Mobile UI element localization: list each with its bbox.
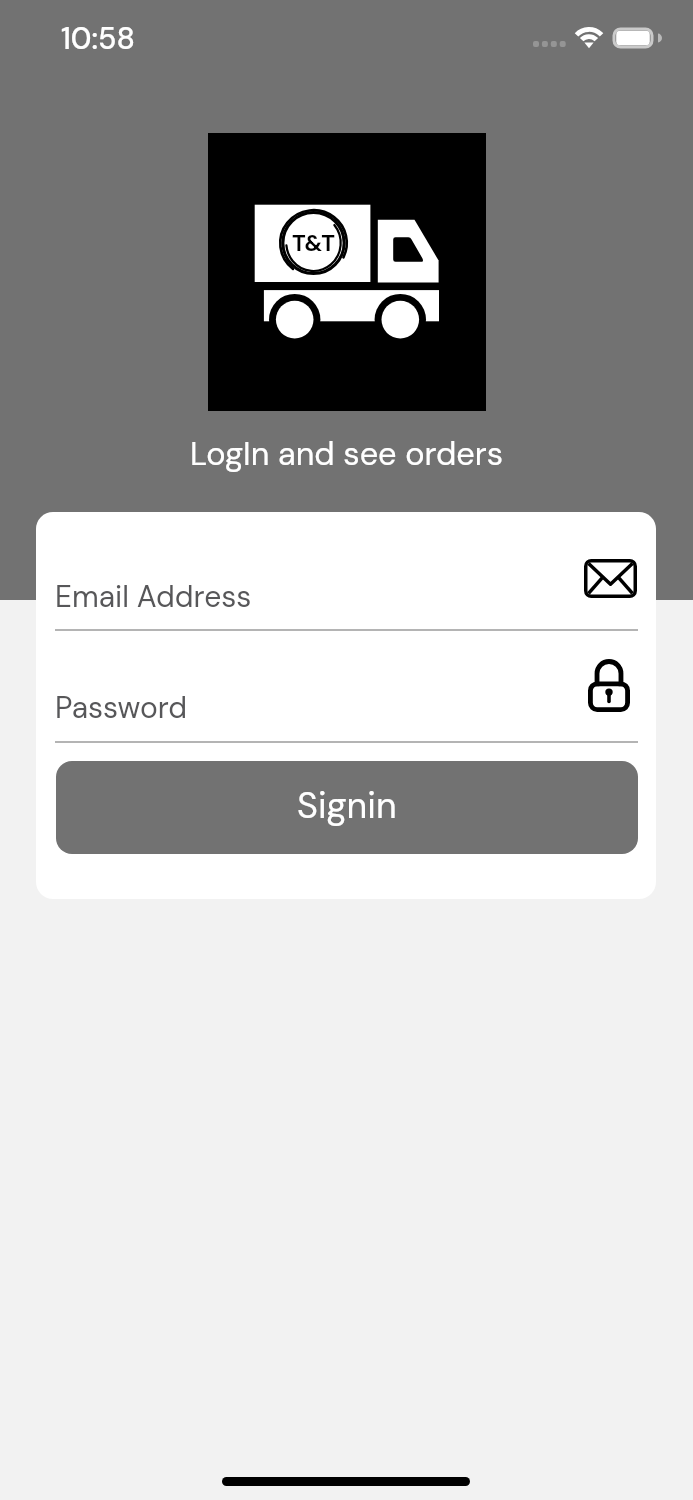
button[interactable]: Email Address	[55, 544, 638, 631]
staticText: Email Address	[55, 577, 252, 616]
button[interactable]: Password	[55, 655, 638, 743]
staticText: T&T	[292, 228, 336, 258]
staticText: Signin	[297, 782, 397, 829]
staticText: 10:58	[61, 19, 135, 58]
button[interactable]: Email	[584, 559, 637, 598]
button[interactable]: Signin	[56, 761, 638, 854]
staticText: Password	[55, 688, 188, 727]
staticText: LogIn and see orders	[0, 433, 693, 475]
button[interactable]: Show password	[588, 661, 630, 712]
